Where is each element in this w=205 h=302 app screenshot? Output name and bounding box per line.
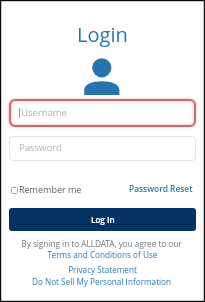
staticText: Username	[21, 106, 67, 119]
button[interactable]: Password	[9, 136, 196, 161]
staticText: Remember me	[19, 183, 82, 195]
button[interactable]: Password Reset	[129, 183, 193, 194]
other: User avatar	[83, 57, 121, 96]
staticText: Log In	[91, 214, 115, 225]
staticText: By signing in to ALLDATA, you agree to o…	[0, 238, 204, 249]
staticText: Password	[19, 141, 62, 154]
staticText: Login	[0, 21, 205, 48]
button[interactable]: Privacy Statement	[0, 264, 205, 275]
button[interactable]: Remember me	[10, 181, 84, 196]
button[interactable]: Log In	[9, 208, 196, 231]
button[interactable]: Username	[6, 96, 199, 130]
button[interactable]: Terms and Conditions of Use	[0, 249, 205, 260]
button[interactable]: Do Not Sell My Personal Information	[0, 276, 204, 287]
